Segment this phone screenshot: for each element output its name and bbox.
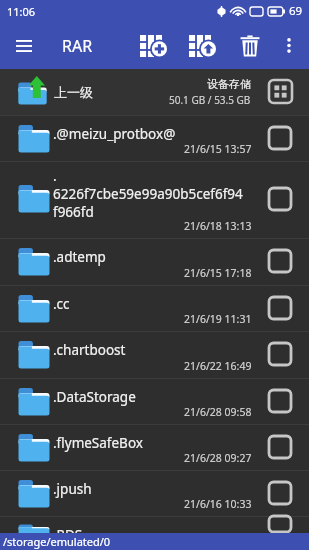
button[interactable]: Delete bbox=[229, 22, 271, 69]
staticText: .@meizu_protbox@ bbox=[53, 125, 176, 143]
button[interactable]: Add to archive bbox=[133, 22, 175, 69]
button[interactable]: Navigation menu bbox=[8, 22, 40, 69]
button[interactable]: Select item bbox=[265, 432, 295, 462]
staticText: .cc bbox=[53, 295, 70, 313]
staticText: 50.1 GB / 53.5 GB bbox=[169, 93, 251, 107]
button[interactable]: More options bbox=[273, 22, 305, 69]
button[interactable]: . bbox=[0, 162, 309, 238]
staticText: 6226f7cbe59e99a90b5cef6f94 bbox=[53, 185, 243, 203]
staticText: 11:06 bbox=[7, 4, 36, 19]
staticText: 21/6/19 11:31 bbox=[184, 312, 252, 326]
button[interactable]: Select item bbox=[265, 123, 295, 153]
staticText: RAR bbox=[62, 35, 93, 57]
button[interactable]: Select item bbox=[265, 478, 295, 508]
staticText: 21/6/15 13:57 bbox=[184, 142, 252, 156]
button[interactable]: Select item bbox=[265, 386, 295, 416]
staticText: 21/6/22 16:49 bbox=[184, 359, 252, 373]
button[interactable]: .cc bbox=[0, 286, 309, 331]
staticText: 设备存储 bbox=[207, 77, 251, 91]
staticText: 21/6/16 10:33 bbox=[184, 497, 252, 511]
button[interactable]: Grid view bbox=[265, 76, 295, 106]
staticText: 上一级 bbox=[54, 84, 93, 100]
staticText: .adtemp bbox=[53, 248, 106, 266]
staticText: .RDS bbox=[53, 526, 83, 533]
staticText: 21/6/28 09:27 bbox=[184, 451, 252, 465]
button[interactable]: Select item bbox=[265, 339, 295, 369]
staticText: .DataStorage bbox=[53, 388, 136, 406]
staticText: .flymeSafeBox bbox=[53, 434, 143, 452]
button[interactable]: Select item bbox=[265, 246, 295, 276]
button[interactable]: Select item bbox=[265, 184, 295, 214]
button[interactable]: .@meizu_protbox@ bbox=[0, 116, 309, 161]
staticText: .chartboost bbox=[53, 341, 126, 359]
button[interactable]: .jpush bbox=[0, 471, 309, 516]
button[interactable]: Select item bbox=[265, 516, 295, 532]
staticText: /storage/emulated/0 bbox=[3, 534, 111, 549]
button[interactable]: .flymeSafeBox bbox=[0, 425, 309, 470]
button[interactable]: Extract archive bbox=[182, 22, 224, 69]
staticText: f966fd bbox=[53, 203, 94, 221]
button[interactable]: .RDS bbox=[0, 517, 309, 533]
button[interactable]: .chartboost bbox=[0, 332, 309, 378]
staticText: 69 bbox=[289, 3, 303, 19]
button[interactable]: .adtemp bbox=[0, 239, 309, 285]
staticText: 21/6/15 17:18 bbox=[184, 266, 252, 280]
staticText: 21/6/18 13:13 bbox=[184, 219, 252, 233]
button[interactable]: Select item bbox=[265, 293, 295, 323]
staticText: .jpush bbox=[53, 480, 92, 498]
staticText: . bbox=[53, 167, 57, 185]
button[interactable]: .DataStorage bbox=[0, 379, 309, 424]
button[interactable]: 上一级 bbox=[0, 69, 309, 115]
staticText: 21/6/28 09:58 bbox=[184, 405, 252, 419]
